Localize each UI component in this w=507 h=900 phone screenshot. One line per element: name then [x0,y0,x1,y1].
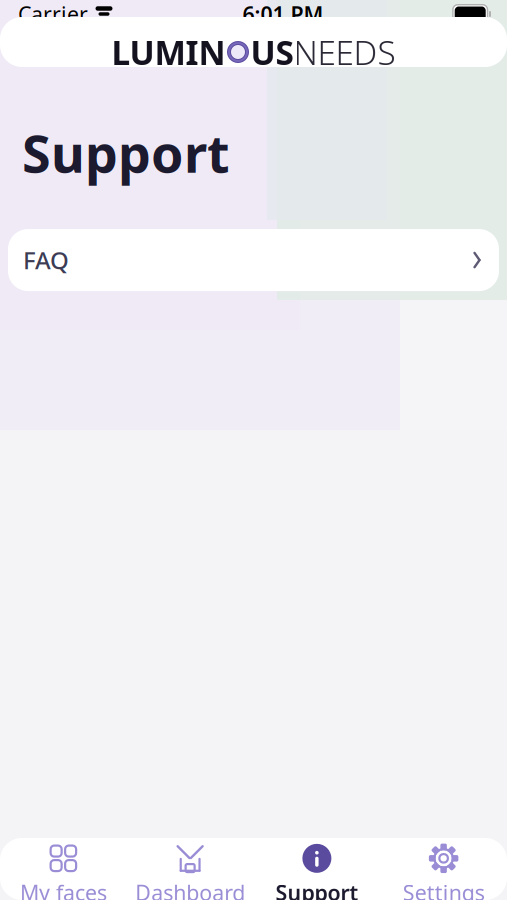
button[interactable]: Dashboard [127,846,254,900]
button[interactable]: My faces [0,846,127,900]
staticText: 6:01 PM [242,0,323,28]
button[interactable]: Settings [380,846,507,900]
staticText: My faces [20,878,107,900]
staticText: NEEDS [293,30,395,74]
button[interactable]: Support [253,846,380,900]
staticText: Support [22,118,230,187]
staticText: US [250,30,293,74]
staticText: Support [275,878,358,900]
staticText: Carrier [18,0,88,28]
staticText: LUMIN [111,30,225,74]
staticText: Dashboard [135,878,245,900]
staticText: FAQ [23,244,69,276]
button[interactable]: FAQ [8,229,499,291]
staticText: Settings [403,878,485,900]
